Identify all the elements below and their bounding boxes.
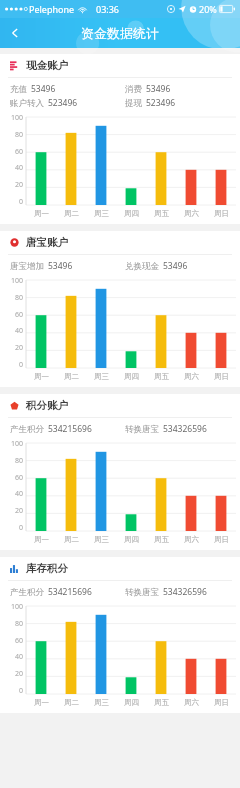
staticText: 周日 (214, 372, 229, 381)
staticText: 20 (14, 180, 23, 190)
staticText: 523496 (48, 97, 78, 109)
staticText: 提现 (125, 98, 142, 109)
staticText: 周一 (34, 535, 49, 544)
staticText: Pelephone (29, 3, 75, 15)
staticText: 消费 (125, 84, 142, 95)
staticText: 100 (10, 602, 23, 612)
staticText: 20 (14, 669, 23, 679)
staticText: 周二 (64, 698, 79, 707)
staticText: 53496 (31, 83, 56, 95)
staticText: 周日 (214, 209, 229, 218)
staticText: 库存积分 (26, 562, 68, 575)
staticText: 转换唐宝 (125, 587, 159, 598)
staticText: 60 (14, 310, 23, 320)
staticText: 100 (10, 113, 23, 123)
button[interactable]: 现金账户 (0, 54, 240, 224)
staticText: 周五 (154, 698, 169, 707)
staticText: 周三 (94, 698, 109, 707)
staticText: 周二 (64, 535, 79, 544)
staticText: 534215696 (48, 423, 92, 435)
staticText: 周二 (64, 209, 79, 218)
staticText: 0 (18, 197, 23, 207)
staticText: 100 (10, 276, 23, 286)
staticText: 周四 (124, 209, 139, 218)
staticText: 534215696 (48, 586, 92, 598)
staticText: 周五 (154, 209, 169, 218)
staticText: 周四 (124, 372, 139, 381)
staticText: 53496 (146, 83, 171, 95)
staticText: 周四 (124, 698, 139, 707)
staticText: 80 (14, 456, 23, 466)
staticText: 周二 (64, 372, 79, 381)
staticText: 周一 (34, 372, 49, 381)
staticText: 转换唐宝 (125, 424, 159, 435)
staticText: 产生积分 (10, 587, 44, 598)
staticText: 唐宝增加 (10, 261, 44, 272)
staticText: 20 (14, 506, 23, 516)
staticText: 周五 (154, 372, 169, 381)
staticText: 充值 (10, 84, 27, 95)
staticText: 账户转入 (10, 98, 44, 109)
staticText: 周六 (184, 698, 199, 707)
staticText: 60 (14, 636, 23, 646)
staticText: 产生积分 (10, 424, 44, 435)
staticText: 周日 (214, 698, 229, 707)
button[interactable]: 积分账户 (0, 394, 240, 550)
staticText: 534326596 (163, 423, 207, 435)
staticText: 0 (18, 523, 23, 533)
staticText: 周三 (94, 372, 109, 381)
staticText: 60 (14, 147, 23, 157)
staticText: 80 (14, 619, 23, 629)
staticText: 积分账户 (26, 399, 68, 412)
staticText: 53496 (48, 260, 73, 272)
staticText: 20% (199, 3, 217, 15)
staticText: 523496 (146, 97, 176, 109)
staticText: 兑换现金 (125, 261, 159, 272)
staticText: 0 (18, 360, 23, 370)
staticText: 80 (14, 293, 23, 303)
staticText: 周五 (154, 535, 169, 544)
button[interactable]: 库存积分 (0, 557, 240, 713)
staticText: 现金账户 (26, 59, 68, 72)
staticText: 20 (14, 343, 23, 353)
staticText: 周日 (214, 535, 229, 544)
staticText: 周四 (124, 535, 139, 544)
staticText: 0 (18, 686, 23, 696)
staticText: 周六 (184, 209, 199, 218)
staticText: 53496 (163, 260, 188, 272)
button[interactable]: 唐宝账户 (0, 231, 240, 387)
staticText: 03:36 (96, 3, 120, 15)
staticText: 60 (14, 473, 23, 483)
staticText: 40 (14, 652, 23, 662)
staticText: 周一 (34, 209, 49, 218)
staticText: 周六 (184, 372, 199, 381)
staticText: 唐宝账户 (26, 236, 68, 249)
staticText: 40 (14, 326, 23, 336)
staticText: 资金数据统计 (81, 25, 159, 41)
staticText: 534326596 (163, 586, 207, 598)
staticText: 40 (14, 163, 23, 173)
staticText: 周三 (94, 209, 109, 218)
staticText: 100 (10, 439, 23, 449)
button[interactable]: Back (0, 18, 30, 48)
staticText: 周六 (184, 535, 199, 544)
staticText: 40 (14, 489, 23, 499)
staticText: 周三 (94, 535, 109, 544)
staticText: 80 (14, 130, 23, 140)
staticText: 周一 (34, 698, 49, 707)
